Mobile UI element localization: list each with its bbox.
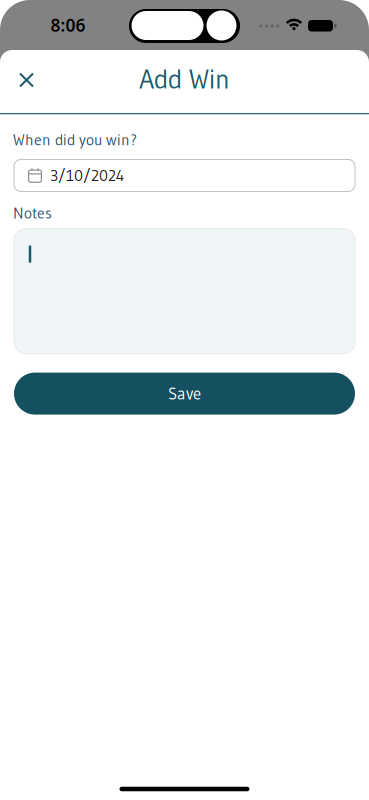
button[interactable]: 3/10/2024 — [14, 159, 355, 191]
staticText: When did you win? — [13, 130, 137, 149]
staticText: Save — [168, 383, 201, 404]
button[interactable]: Save — [14, 373, 355, 415]
button[interactable]: Close — [4, 62, 48, 98]
staticText: 3/10/2024 — [50, 166, 124, 185]
staticText: 8:06 — [50, 13, 85, 36]
staticText: Notes — [13, 203, 52, 222]
staticText: Add Win — [139, 63, 230, 95]
